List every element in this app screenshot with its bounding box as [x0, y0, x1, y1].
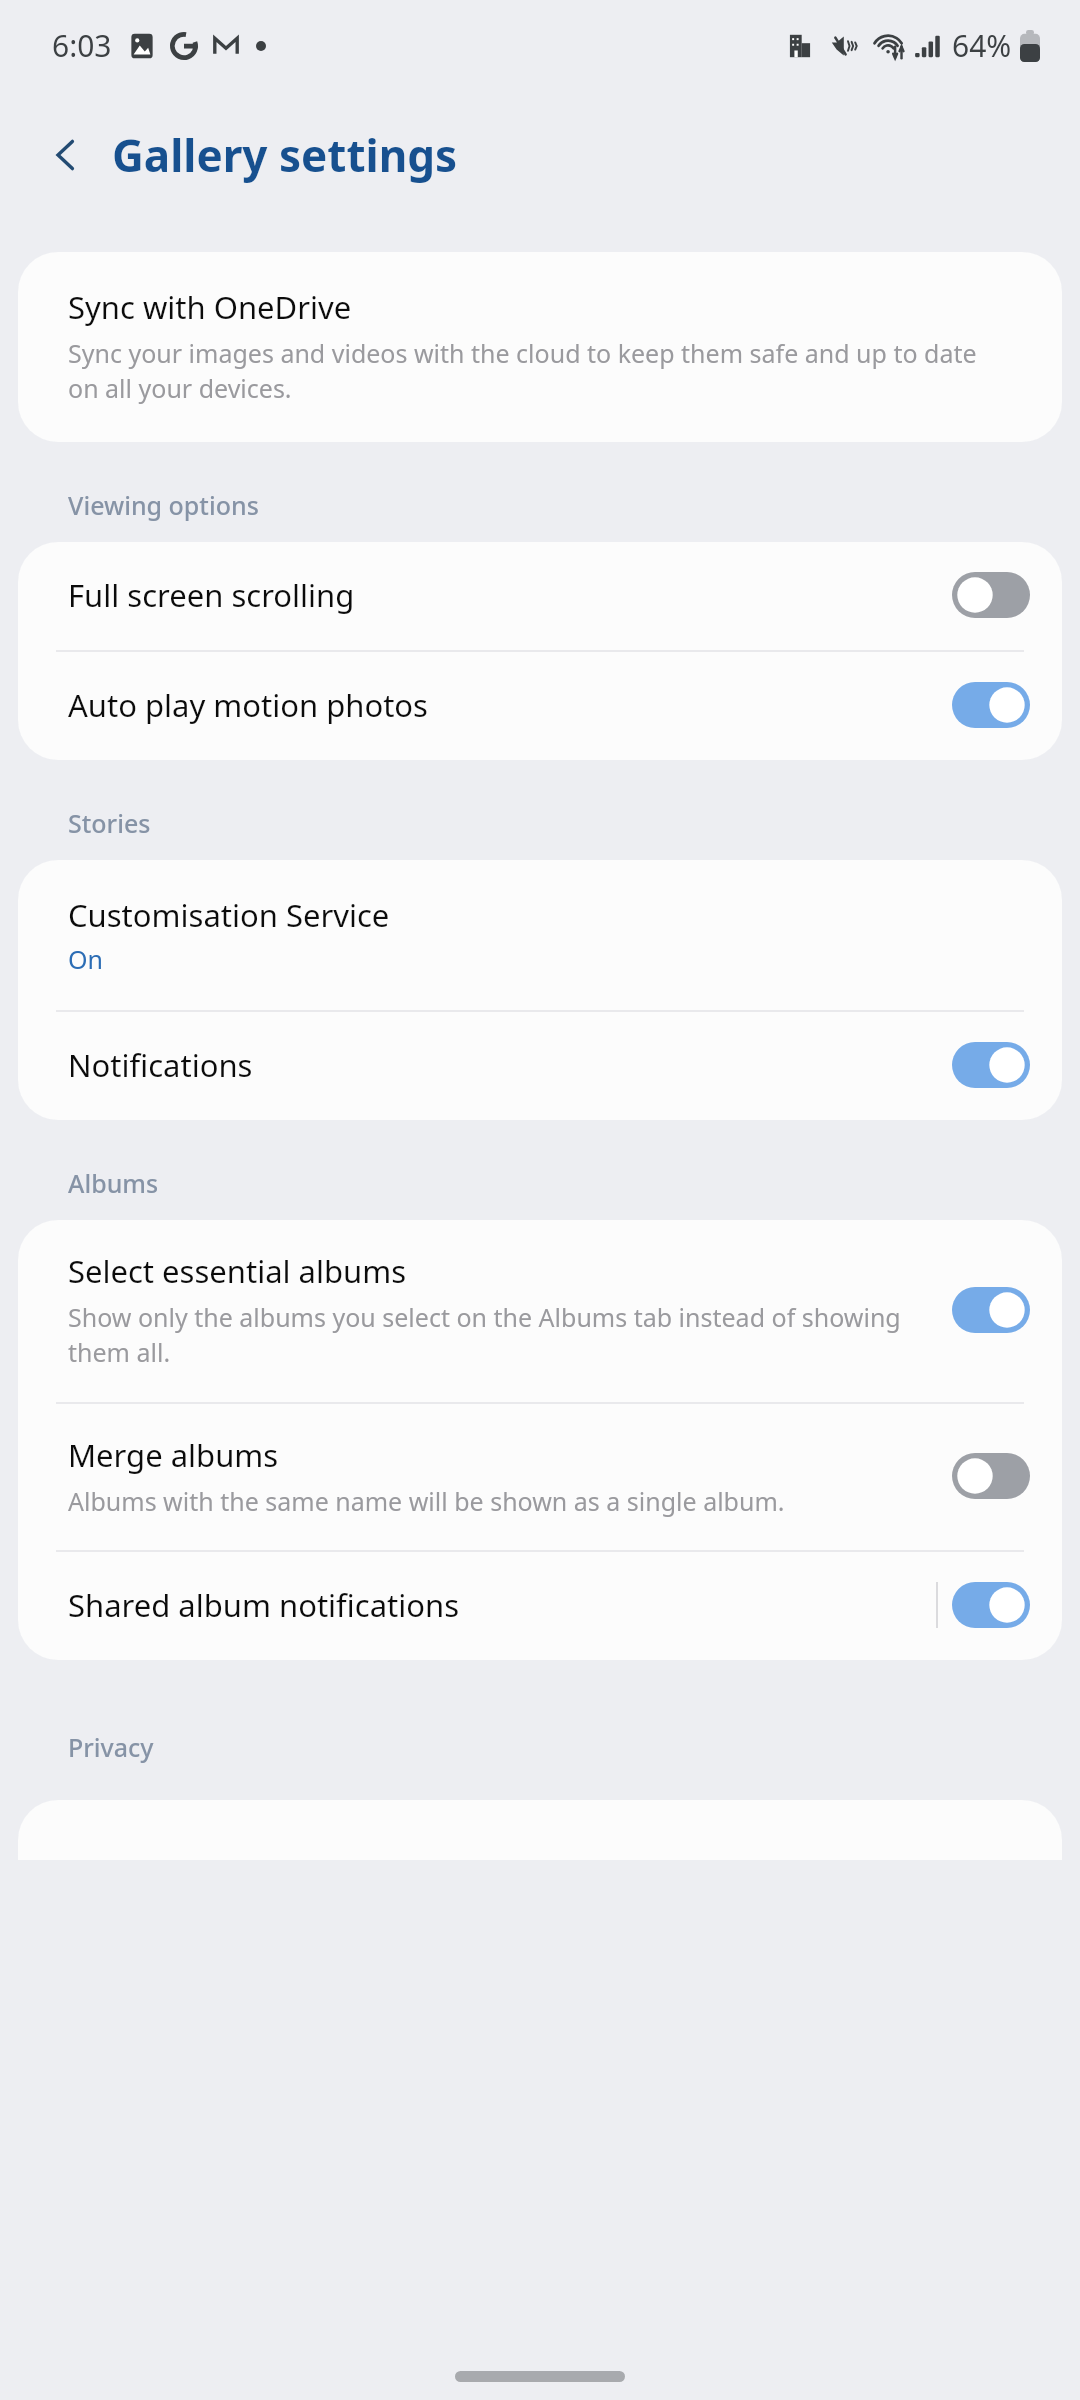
button[interactable]: Shared album notifications — [18, 1552, 1062, 1660]
button[interactable]: On — [952, 1287, 1030, 1333]
staticText: 6:03 — [52, 25, 112, 66]
staticText: Privacy — [68, 1730, 154, 1764]
staticText: Select essential albums — [68, 1250, 407, 1292]
staticText: Gallery settings — [112, 125, 458, 185]
staticText: Notifications — [68, 1044, 253, 1086]
staticText: Viewing options — [68, 488, 259, 522]
staticText: On — [68, 942, 103, 976]
staticText: 64% — [952, 25, 1012, 66]
staticText: Albums with the same name will be shown … — [68, 1484, 785, 1518]
staticText: Full screen scrolling — [68, 574, 355, 616]
staticText: Show only the albums you select on the A… — [68, 1300, 934, 1370]
staticText: Auto play motion photos — [68, 684, 428, 726]
button[interactable]: Notifications — [18, 1012, 1062, 1120]
button[interactable]: Auto play motion photos — [18, 652, 1062, 760]
button[interactable]: Merge albums — [18, 1404, 1062, 1550]
button[interactable]: Back — [34, 123, 98, 187]
staticText: Sync with OneDrive — [68, 286, 352, 328]
button[interactable]: Full screen scrolling — [18, 542, 1062, 650]
staticText: Shared album notifications — [68, 1584, 460, 1626]
button[interactable]: Off — [952, 1453, 1030, 1499]
button[interactable]: Customisation Service — [18, 860, 1062, 1010]
button[interactable]: Select essential albums — [18, 1220, 1062, 1402]
staticText: Albums — [68, 1166, 159, 1200]
button[interactable]: On — [952, 1582, 1030, 1628]
button[interactable]: On — [952, 1042, 1030, 1088]
button[interactable]: Sync with OneDrive — [18, 252, 1062, 442]
button[interactable]: On — [952, 682, 1030, 728]
button[interactable]: Off — [952, 572, 1030, 618]
staticText: Customisation Service — [68, 894, 390, 936]
staticText: Merge albums — [68, 1434, 279, 1476]
staticText: Sync your images and videos with the clo… — [68, 336, 1012, 406]
staticText: Stories — [68, 806, 151, 840]
